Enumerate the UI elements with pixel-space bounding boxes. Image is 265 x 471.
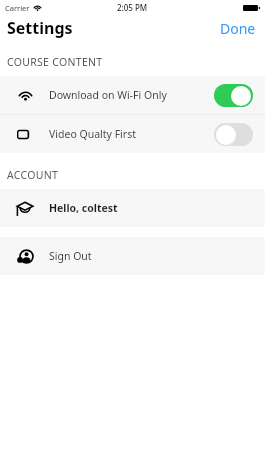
staticText: Hello, coltest (49, 201, 118, 215)
staticText: Sign Out (49, 249, 92, 263)
button[interactable]: Done (211, 15, 265, 41)
staticText: Download on Wi-Fi Only (49, 88, 167, 102)
button[interactable]: Download on Wi-Fi Only (0, 76, 265, 114)
staticText: COURSE CONTENT (7, 55, 265, 69)
staticText: Settings (7, 17, 73, 39)
button[interactable]: Toggle on (214, 84, 253, 107)
button[interactable]: Video Qualty First (0, 115, 265, 153)
button[interactable]: Hello, coltest (0, 189, 265, 227)
staticText: 2:05 PM (117, 2, 148, 13)
button[interactable]: Sign Out (0, 237, 265, 275)
staticText: Video Qualty First (49, 127, 136, 141)
staticText: ACCOUNT (7, 168, 265, 182)
staticText: Done (220, 19, 256, 37)
staticText: Carrier (5, 3, 30, 13)
button[interactable]: Toggle off (214, 123, 253, 146)
